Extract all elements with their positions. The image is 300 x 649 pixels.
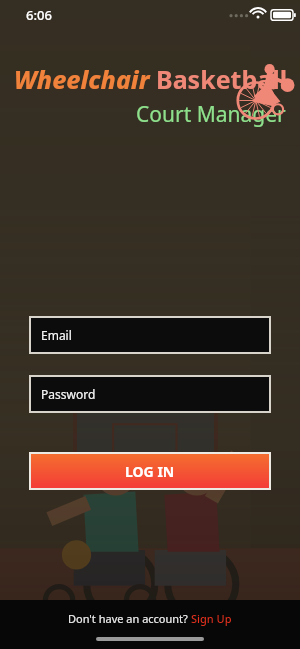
staticText: Sign Up (191, 611, 232, 626)
staticText: LOG IN (125, 462, 175, 481)
staticText: Don't have an account? (68, 611, 191, 626)
staticText: Court Manager (136, 100, 286, 129)
staticText: Email (41, 327, 72, 343)
button[interactable]: Password (29, 375, 271, 413)
staticText: Basketball (156, 62, 288, 96)
button[interactable]: Email (29, 316, 271, 354)
button[interactable]: LOG IN (29, 452, 271, 490)
other: Wheelchair basketball logo (236, 62, 296, 117)
staticText: Wheelchair (14, 62, 150, 96)
staticText: 6:06 (26, 6, 52, 24)
staticText: Password (41, 386, 96, 402)
button[interactable]: Don't have an account? (68, 611, 232, 626)
